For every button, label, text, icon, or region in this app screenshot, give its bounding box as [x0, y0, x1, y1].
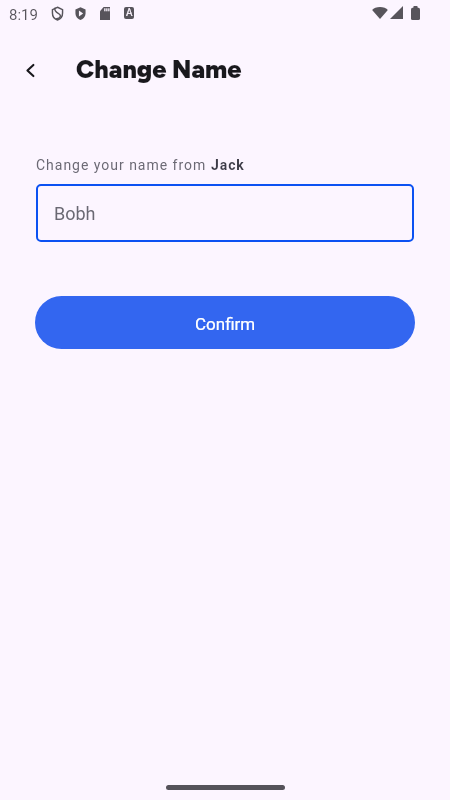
staticText: Change your name from — [36, 157, 211, 173]
button[interactable]: Back — [10, 50, 51, 90]
button[interactable]: Confirm — [35, 296, 415, 349]
staticText: Confirm — [195, 314, 256, 334]
staticText: 8:19 — [9, 6, 38, 24]
staticText: A — [126, 7, 133, 19]
staticText: Change Name — [76, 54, 242, 84]
button[interactable]: Bobh — [36, 184, 414, 242]
staticText: Jack — [211, 157, 245, 173]
staticText: Bobh — [54, 203, 96, 224]
button[interactable]: Home — [0, 770, 450, 800]
